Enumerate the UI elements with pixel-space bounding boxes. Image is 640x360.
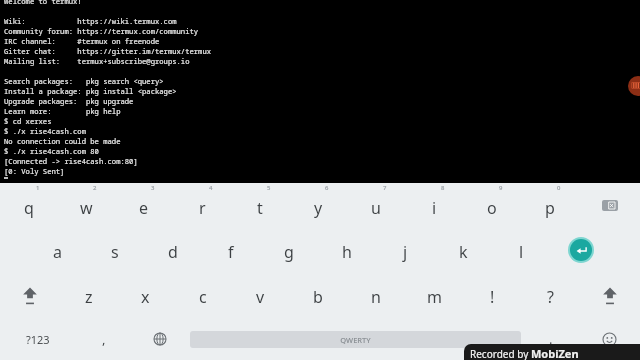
- staticText: d: [168, 241, 178, 263]
- button[interactable]: 0: [521, 183, 579, 228]
- button[interactable]: 3: [115, 183, 173, 228]
- button[interactable]: ,: [76, 318, 132, 360]
- button[interactable]: !: [463, 272, 521, 318]
- staticText: QWERTY: [340, 335, 371, 345]
- button[interactable]: f: [202, 228, 260, 272]
- button[interactable]: 8: [405, 183, 463, 228]
- button[interactable]: s: [86, 228, 144, 272]
- button[interactable]: x: [117, 272, 174, 318]
- staticText: ?123: [26, 332, 50, 347]
- button[interactable]: m: [405, 272, 463, 318]
- staticText: x: [141, 286, 150, 308]
- button[interactable]: Enter: [550, 228, 611, 272]
- button[interactable]: ?: [521, 272, 579, 318]
- staticText: q: [24, 197, 34, 219]
- staticText: 5: [267, 184, 271, 192]
- button[interactable]: Change keyboard language: [132, 318, 188, 360]
- staticText: 3: [151, 184, 155, 192]
- staticText: 8: [441, 184, 445, 192]
- staticText: Gitter chat: https://gitter.im/termux/te…: [4, 46, 212, 56]
- staticText: Recorded by: [470, 347, 531, 360]
- staticText: c: [199, 286, 207, 308]
- button[interactable]: 4: [173, 183, 231, 228]
- button[interactable]: l: [492, 228, 550, 272]
- staticText: Community forum: https://termux.com/comm…: [4, 26, 199, 36]
- staticText: r: [199, 197, 206, 219]
- staticText: g: [284, 241, 294, 263]
- button[interactable]: .: [523, 318, 579, 360]
- staticText: Mailing list: termux+subscribe@groups.io: [4, 56, 190, 66]
- staticText: j: [403, 241, 408, 263]
- staticText: ?: [547, 286, 554, 308]
- staticText: .: [549, 330, 553, 348]
- staticText: y: [314, 197, 323, 219]
- staticText: [0: Voly Sent]: [4, 166, 65, 176]
- button[interactable]: n: [347, 272, 405, 318]
- staticText: o: [487, 197, 497, 219]
- button[interactable]: Shift: [579, 272, 640, 318]
- staticText: [Connected -> rise4cash.com:80]: [4, 156, 138, 166]
- staticText: k: [459, 241, 468, 263]
- button[interactable]: z: [60, 272, 117, 318]
- button[interactable]: b: [289, 272, 347, 318]
- button[interactable]: h: [318, 228, 376, 272]
- button[interactable]: 6: [289, 183, 347, 228]
- button[interactable]: 2: [57, 183, 115, 228]
- button[interactable]: 1: [0, 183, 57, 228]
- button[interactable]: k: [434, 228, 492, 272]
- staticText: ,: [102, 330, 106, 348]
- button[interactable]: j: [376, 228, 434, 272]
- staticText: i: [432, 197, 437, 219]
- staticText: 4: [209, 184, 213, 192]
- staticText: !: [490, 286, 495, 308]
- button[interactable]: a: [28, 228, 86, 272]
- staticText: m: [427, 286, 442, 308]
- button[interactable]: Shift: [0, 272, 60, 318]
- staticText: Learn more: pkg help: [4, 106, 121, 116]
- staticText: s: [111, 241, 119, 263]
- staticText: b: [313, 286, 323, 308]
- staticText: $ cd xerxes: [4, 116, 52, 126]
- staticText: t: [257, 197, 263, 219]
- staticText: 0: [557, 184, 561, 192]
- button[interactable]: c: [174, 272, 231, 318]
- staticText: a: [53, 241, 62, 263]
- staticText: e: [139, 197, 149, 219]
- button[interactable]: Backspace: [579, 183, 640, 228]
- staticText: f: [228, 241, 234, 263]
- button[interactable]: v: [231, 272, 289, 318]
- button[interactable]: 5: [231, 183, 289, 228]
- button[interactable]: QWERTY: [190, 331, 521, 348]
- staticText: p: [545, 197, 555, 219]
- staticText: IRC channel: #termux on freenode: [4, 36, 160, 46]
- staticText: 9: [499, 184, 503, 192]
- button[interactable]: d: [144, 228, 202, 272]
- staticText: Wiki: https://wiki.termux.com: [4, 16, 177, 26]
- staticText: 7: [383, 184, 387, 192]
- button[interactable]: g: [260, 228, 318, 272]
- button[interactable]: 9: [463, 183, 521, 228]
- staticText: No connection could be made: [4, 136, 121, 146]
- button[interactable]: 7: [347, 183, 405, 228]
- button[interactable]: Emoji: [579, 318, 640, 360]
- staticText: l: [519, 241, 524, 263]
- staticText: $ ./x rise4cash.com 80: [4, 146, 99, 156]
- staticText: z: [85, 286, 93, 308]
- staticText: 1: [36, 184, 40, 192]
- staticText: 2: [93, 184, 97, 192]
- staticText: h: [342, 241, 352, 263]
- staticText: v: [256, 286, 265, 308]
- staticText: w: [80, 197, 93, 219]
- staticText: Welcome to termux!: [4, 0, 82, 6]
- staticText: Upgrade packages: pkg upgrade: [4, 96, 134, 106]
- staticText: Search packages: pkg search <query>: [4, 76, 164, 86]
- button[interactable]: ?123: [0, 318, 76, 360]
- staticText: n: [371, 286, 381, 308]
- staticText: $ ./x rise4cash.com: [4, 126, 86, 136]
- staticText: u: [371, 197, 381, 219]
- staticText: 6: [325, 184, 329, 192]
- staticText: MobiZen: [531, 346, 579, 360]
- staticText: Install a package: pkg install <package>: [4, 86, 177, 96]
